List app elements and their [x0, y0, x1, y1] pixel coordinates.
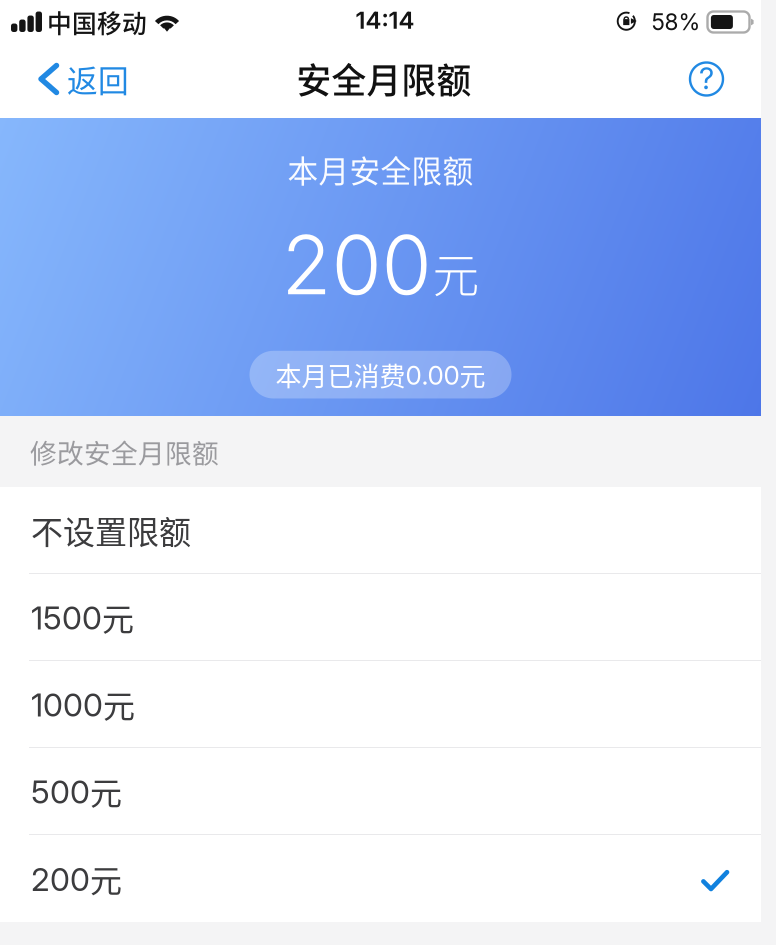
staticText: ?	[699, 61, 714, 96]
staticText: 200	[281, 215, 431, 314]
staticText: 安全月限额	[296, 53, 471, 104]
button[interactable]: 不设置限额	[0, 487, 761, 574]
staticText: 1500元	[31, 594, 134, 640]
staticText: 本月已消费0.00元	[275, 356, 485, 393]
staticText: 200元	[31, 855, 122, 902]
staticText: 元	[432, 238, 479, 306]
button[interactable]: 帮助	[671, 47, 742, 115]
button[interactable]: 1500元	[0, 574, 761, 661]
staticText: 不设置限额	[31, 507, 191, 553]
staticText: 中国移动	[47, 4, 147, 40]
staticText: 500元	[31, 768, 122, 814]
staticText: 修改安全月限额	[30, 432, 219, 471]
button[interactable]: 200元	[0, 835, 761, 922]
button[interactable]: 1000元	[0, 661, 761, 748]
staticText: 本月安全限额	[287, 147, 473, 191]
staticText: 1000元	[31, 681, 135, 727]
button[interactable]: 返回	[0, 47, 147, 115]
staticText: 58%	[651, 8, 700, 36]
button[interactable]: 500元	[0, 748, 761, 835]
staticText: 14:14	[355, 5, 414, 34]
staticText: 返回	[67, 57, 129, 101]
